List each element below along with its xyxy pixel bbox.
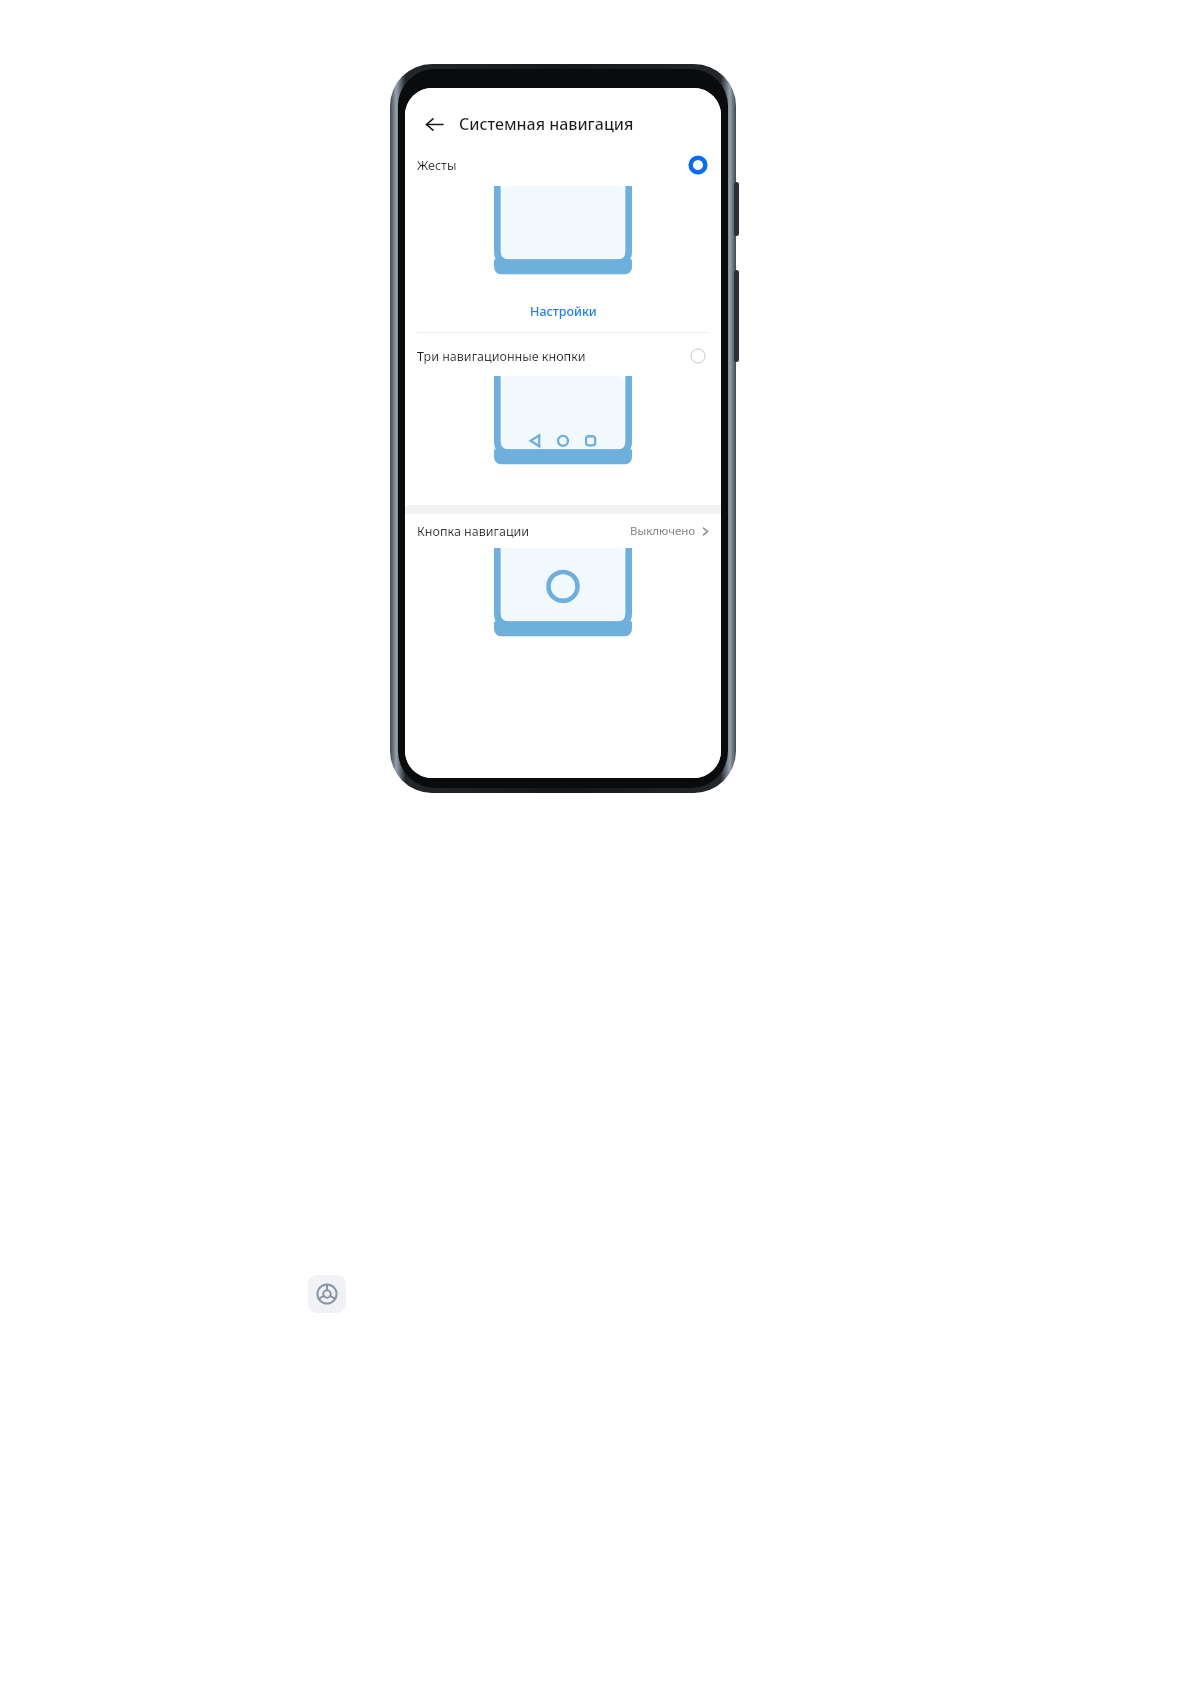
button[interactable]: Три навигационные кнопки — [405, 333, 721, 505]
button[interactable]: Выбрано — [687, 154, 709, 176]
button[interactable]: Настройки — [308, 1275, 346, 1313]
staticText: Системная навигация — [459, 113, 634, 135]
staticText: Три навигационные кнопки — [417, 348, 586, 365]
button[interactable]: Настройки — [520, 300, 607, 323]
button[interactable]: Назад — [419, 109, 449, 139]
staticText: Жесты — [417, 157, 457, 174]
button[interactable]: Не выбрано — [687, 345, 709, 367]
staticText: Кнопка навигации — [417, 523, 530, 540]
staticText: Настройки — [530, 303, 597, 320]
button[interactable]: Кнопка навигации — [405, 514, 721, 548]
button[interactable]: Жесты — [405, 152, 721, 332]
staticText: Выключено — [630, 523, 696, 539]
